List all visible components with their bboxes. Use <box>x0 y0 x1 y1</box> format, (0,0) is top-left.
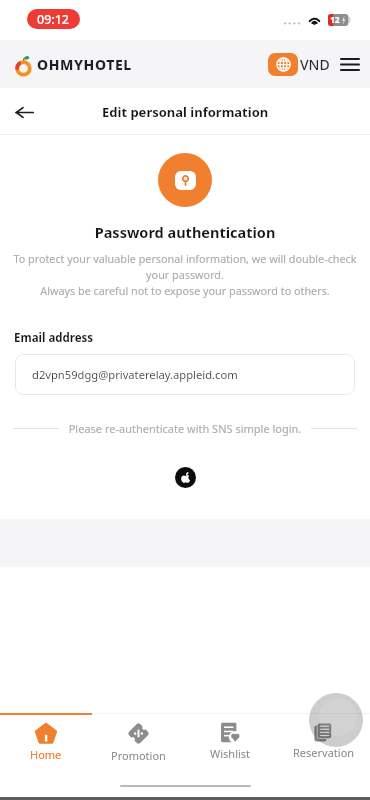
button[interactable]: Reservation <box>277 713 370 774</box>
button[interactable]: Wishlist <box>184 713 277 774</box>
button[interactable]: d2vpn59dgg@privaterelay.appleid.com <box>15 354 355 395</box>
button[interactable]: Home <box>0 713 92 774</box>
staticText: d2vpn59dgg@privaterelay.appleid.com <box>32 367 238 382</box>
staticText: Password authentication <box>0 222 370 242</box>
button[interactable]: Menu <box>336 51 363 78</box>
staticText: To protect your valuable personal inform… <box>0 251 370 298</box>
staticText: 12 <box>330 14 340 25</box>
button[interactable]: Back <box>6 94 42 130</box>
button[interactable]: Language <box>268 53 298 76</box>
staticText: OHMYHOTEL <box>37 55 132 74</box>
button[interactable]: OHMYHOTEL <box>15 53 132 75</box>
staticText: Wishlist <box>210 746 251 761</box>
staticText: 09:12 <box>37 11 70 28</box>
staticText: Home <box>30 747 62 762</box>
staticText: Reservation <box>293 745 355 760</box>
staticText: Please re-authenticate with SNS simple l… <box>59 421 311 436</box>
staticText: Promotion <box>111 748 166 763</box>
staticText: Edit personal information <box>102 103 269 121</box>
button[interactable]: Promotion <box>92 713 184 774</box>
button[interactable]: Sign in with Apple <box>175 467 196 488</box>
staticText: Email address <box>14 330 94 346</box>
staticText: VND <box>300 55 330 74</box>
